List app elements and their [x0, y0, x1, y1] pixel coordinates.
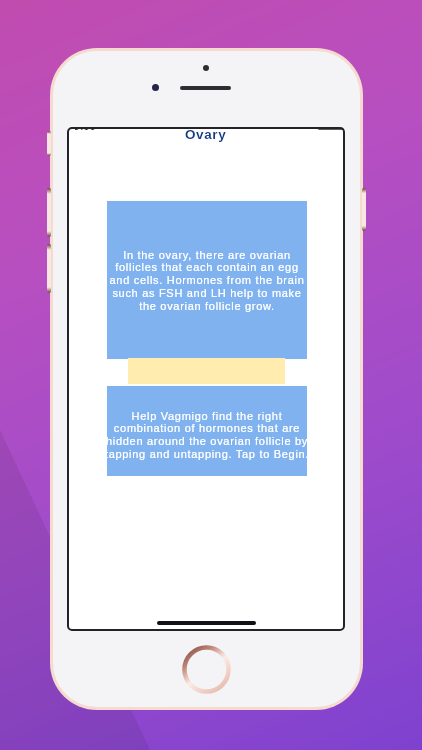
staticText: Ovary [185, 127, 227, 142]
button[interactable]: Home [182, 645, 231, 694]
staticText: Help Vagmigo find the right combination … [87, 410, 327, 480]
button[interactable] [107, 201, 307, 359]
button[interactable] [107, 386, 307, 476]
staticText: 9:00 [74, 127, 96, 133]
staticText: In the ovary, there are ovarian follicle… [87, 249, 327, 329]
